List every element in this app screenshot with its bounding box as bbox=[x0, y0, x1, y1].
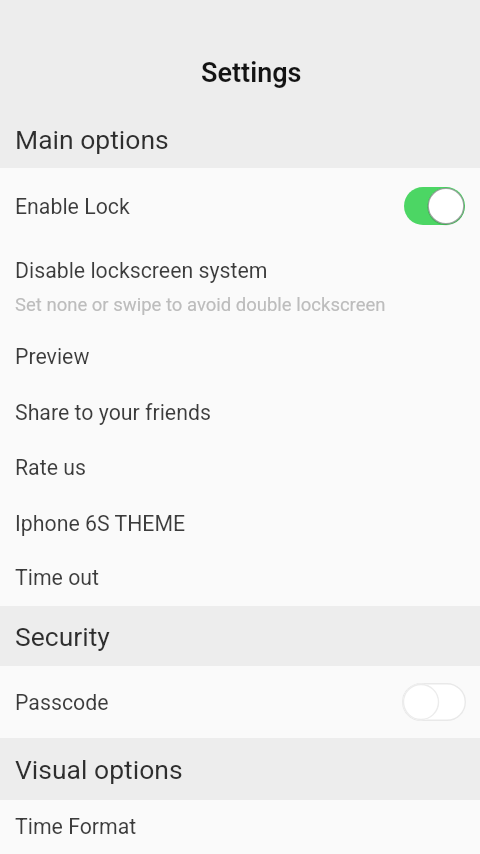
button[interactable]: Enable Lock bbox=[0, 168, 480, 244]
button[interactable]: Passcode bbox=[0, 666, 480, 738]
button[interactable]: Iphone 6S THEME bbox=[0, 495, 480, 550]
staticText: Preview bbox=[15, 344, 90, 369]
button[interactable]: Share to your friends bbox=[0, 384, 480, 439]
button[interactable]: Enable Lock, on bbox=[404, 187, 465, 225]
staticText: Iphone 6S THEME bbox=[15, 511, 186, 536]
staticText: Visual options bbox=[15, 754, 183, 785]
staticText: Time Format bbox=[15, 814, 137, 839]
staticText: Enable Lock bbox=[15, 194, 130, 219]
staticText: Security bbox=[15, 621, 110, 652]
staticText: Settings bbox=[201, 57, 302, 89]
button[interactable]: Disable lockscreen system bbox=[0, 244, 480, 328]
staticText: Share to your friends bbox=[15, 400, 211, 425]
button[interactable]: Rate us bbox=[0, 439, 480, 495]
staticText: Passcode bbox=[15, 690, 109, 715]
staticText: Disable lockscreen system bbox=[15, 258, 268, 283]
button[interactable]: Time Format bbox=[0, 800, 480, 854]
button[interactable]: Preview bbox=[0, 328, 480, 384]
staticText: Main options bbox=[15, 124, 169, 155]
staticText: Time out bbox=[15, 565, 99, 590]
button[interactable]: Passcode, off bbox=[402, 683, 466, 721]
staticText: Set none or swipe to avoid double locksc… bbox=[15, 294, 386, 316]
button[interactable]: Time out bbox=[0, 550, 480, 606]
staticText: Rate us bbox=[15, 455, 86, 480]
